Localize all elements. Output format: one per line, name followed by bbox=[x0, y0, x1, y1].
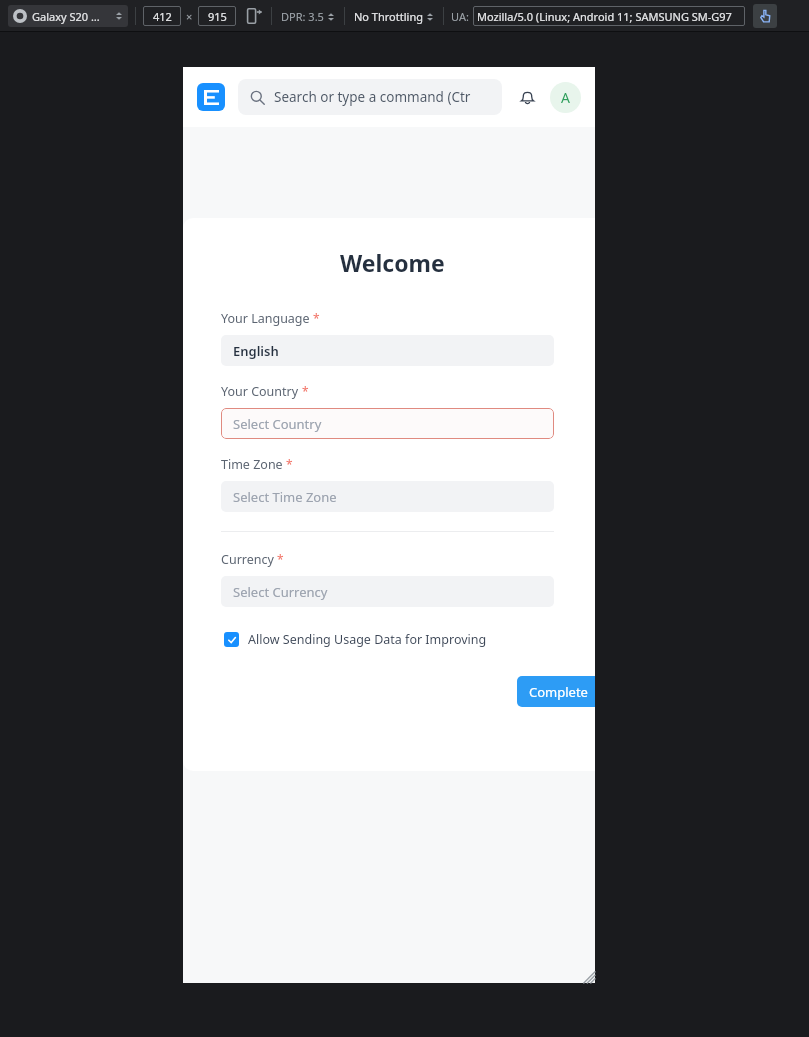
button[interactable]: Select Country bbox=[221, 408, 554, 439]
staticText: × bbox=[186, 9, 193, 24]
staticText: * bbox=[313, 310, 320, 326]
staticText: 412 bbox=[153, 9, 172, 24]
staticText: Select Time Zone bbox=[233, 488, 337, 506]
button[interactable]: Touch simulation bbox=[753, 4, 777, 28]
button[interactable]: DPR: 3.5 bbox=[279, 9, 337, 24]
button[interactable]: English bbox=[221, 335, 554, 366]
button[interactable]: 412 bbox=[143, 6, 181, 26]
button[interactable]: Mozilla/5.0 (Linux; Android 11; SAMSUNG … bbox=[473, 6, 745, 26]
staticText: Select Country bbox=[233, 415, 322, 433]
staticText: DPR: 3.5 bbox=[281, 9, 324, 24]
staticText: Allow Sending Usage Data for Improving A… bbox=[248, 631, 557, 648]
staticText: Complete bbox=[529, 683, 588, 701]
staticText: * bbox=[302, 383, 309, 399]
staticText: English bbox=[233, 342, 279, 360]
button[interactable]: Search or type a command (Ctr bbox=[238, 79, 502, 115]
staticText: Mozilla/5.0 (Linux; Android 11; SAMSUNG … bbox=[477, 9, 732, 24]
button[interactable]: Rotate bbox=[244, 6, 264, 26]
button[interactable]: Account bbox=[550, 82, 581, 113]
staticText: Your Language bbox=[221, 310, 310, 327]
staticText: 915 bbox=[208, 9, 227, 24]
staticText: Search or type a command (Ctr bbox=[274, 88, 471, 106]
button[interactable]: 915 bbox=[198, 6, 236, 26]
staticText: No Throttling bbox=[354, 9, 423, 24]
staticText: Galaxy S20 … bbox=[32, 9, 100, 24]
button[interactable]: Galaxy S20 … bbox=[8, 5, 128, 27]
button[interactable]: No Throttling bbox=[352, 9, 436, 24]
button[interactable]: Complete bbox=[517, 676, 595, 707]
button[interactable]: Select Currency bbox=[221, 576, 554, 607]
staticText: Currency bbox=[221, 551, 274, 568]
staticText: UA: bbox=[451, 9, 469, 24]
staticText: A bbox=[561, 88, 570, 107]
button[interactable]: Allow Sending Usage Data for Improving A… bbox=[224, 631, 557, 648]
button[interactable]: Home bbox=[197, 83, 225, 111]
staticText: Your Country bbox=[221, 383, 299, 400]
button[interactable]: Notifications bbox=[514, 84, 540, 110]
staticText: Welcome bbox=[340, 247, 445, 278]
button[interactable]: Select Time Zone bbox=[221, 481, 554, 512]
staticText: Select Currency bbox=[233, 583, 328, 601]
staticText: * bbox=[286, 456, 293, 472]
staticText: * bbox=[277, 551, 284, 567]
staticText: Time Zone bbox=[221, 456, 283, 473]
